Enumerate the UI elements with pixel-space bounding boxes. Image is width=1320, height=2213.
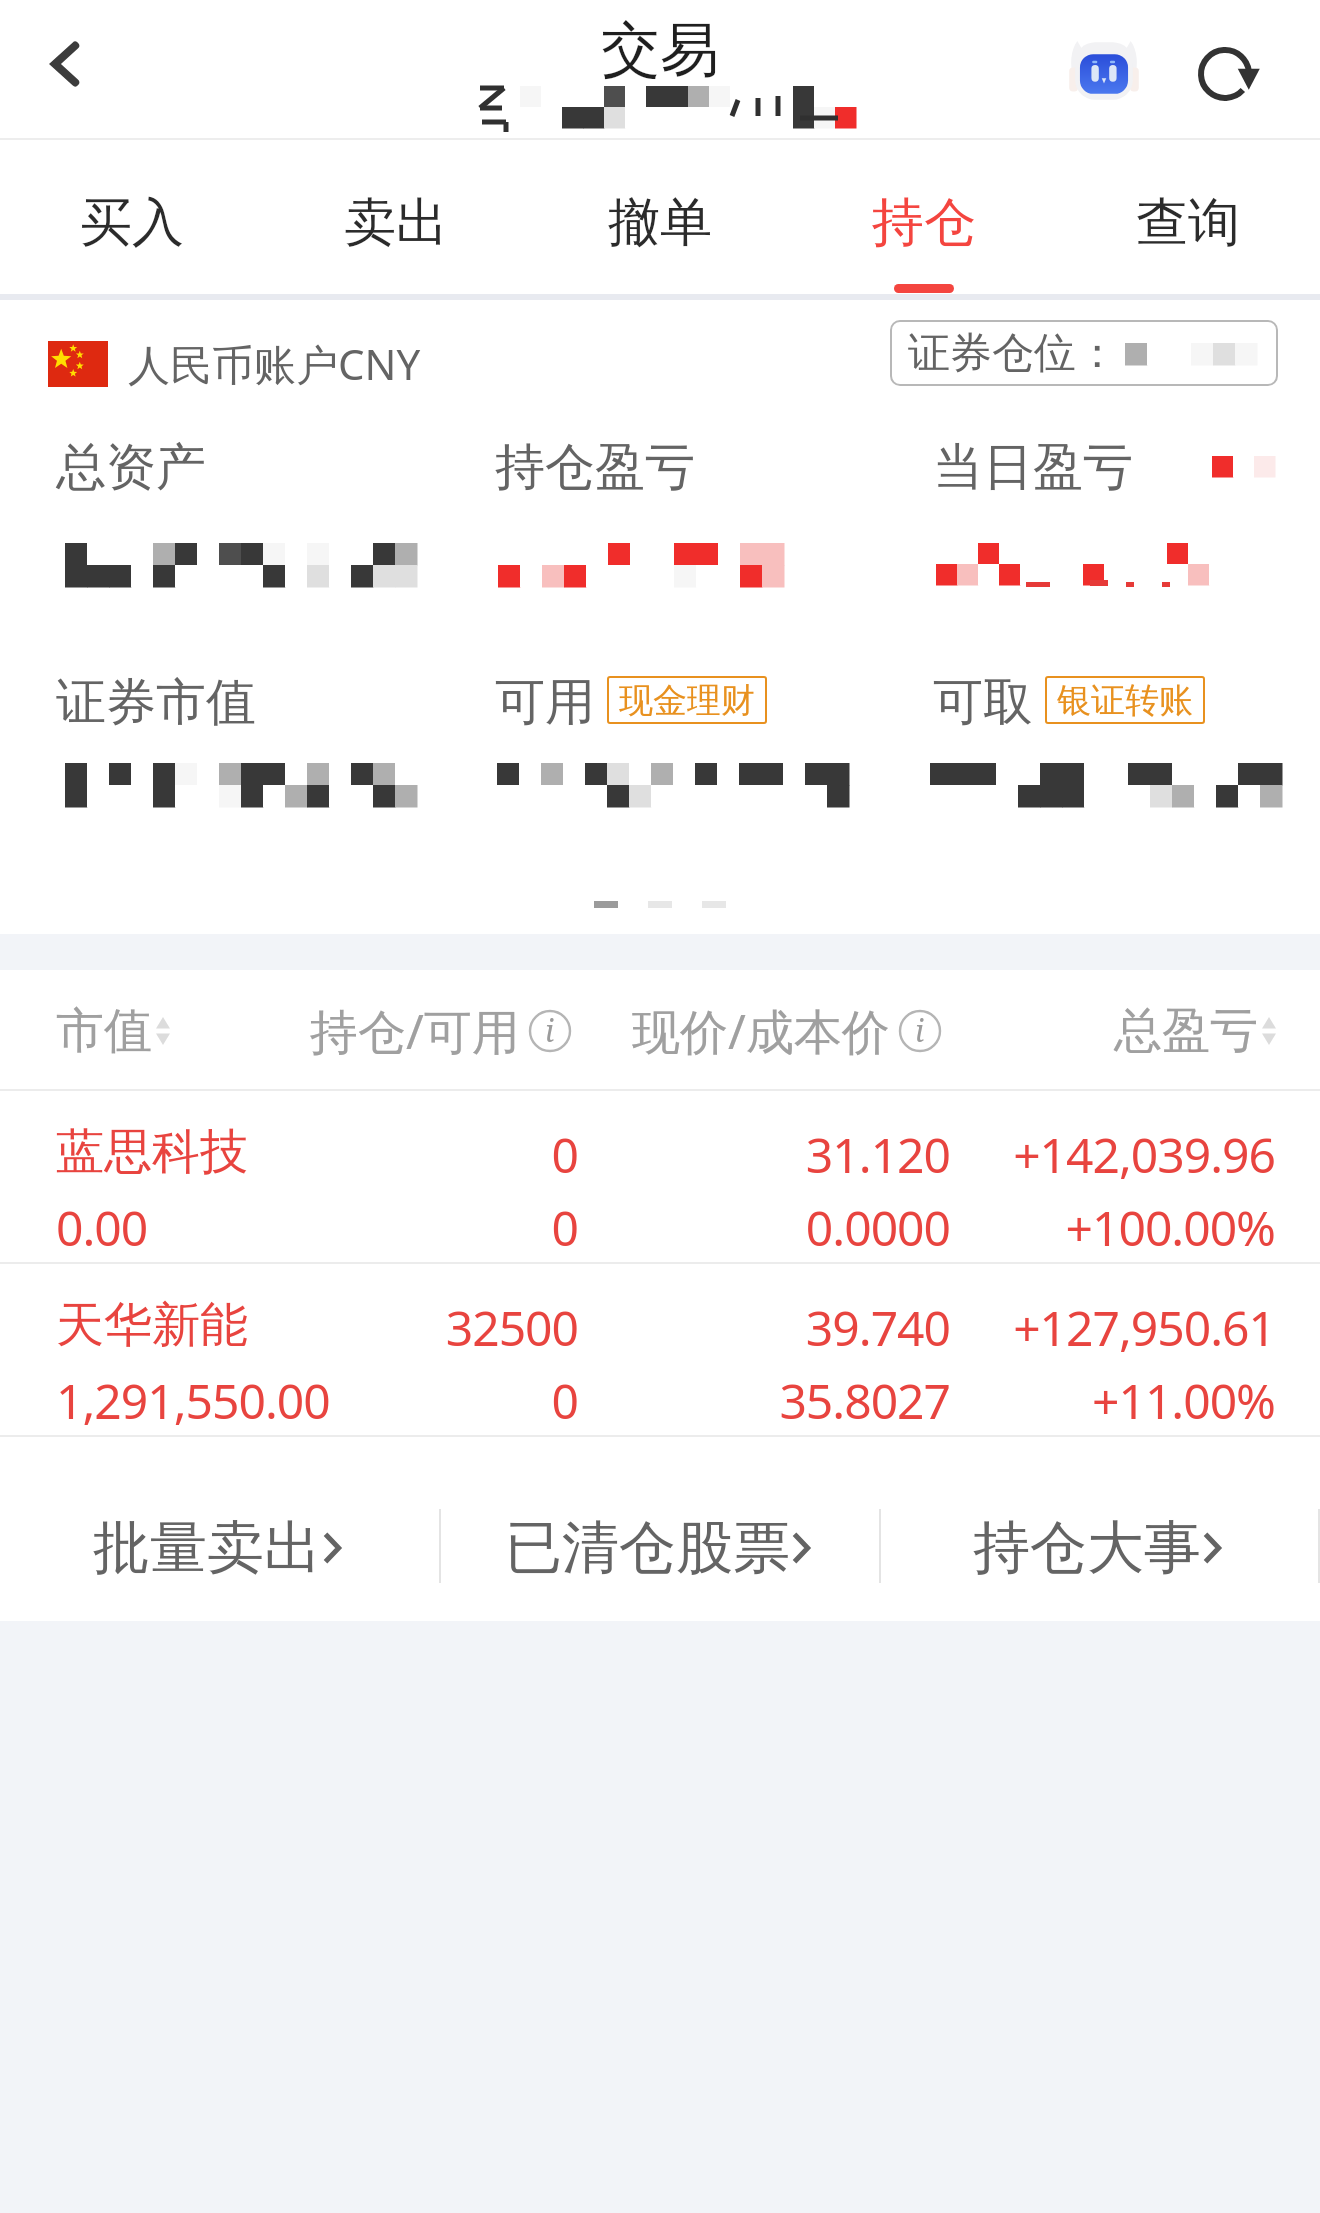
staticText: 批量卖出 bbox=[93, 1512, 321, 1584]
staticText: +11.00% bbox=[965, 1368, 1275, 1433]
staticText: 0 bbox=[178, 1122, 578, 1187]
staticText: 0.0000 bbox=[610, 1195, 950, 1260]
button[interactable]: Refresh bbox=[1191, 38, 1263, 110]
staticText: +127,950.61 bbox=[965, 1295, 1275, 1360]
staticText: 当日盈亏 bbox=[933, 436, 1133, 499]
button[interactable]: 银证转账 bbox=[1045, 676, 1205, 724]
staticText: 卖出 bbox=[344, 190, 448, 256]
staticText: 可取 bbox=[933, 671, 1033, 734]
staticText: 已清仓股票 bbox=[505, 1512, 790, 1584]
button[interactable]: 天华新能 bbox=[0, 1264, 1320, 1437]
staticText: 现价/成本价 bbox=[632, 998, 890, 1064]
button[interactable]: 现金理财 bbox=[607, 676, 767, 724]
staticText: 证券仓位： bbox=[908, 327, 1118, 380]
staticText: 可用 bbox=[495, 671, 595, 734]
staticText: 银证转账 bbox=[1057, 679, 1193, 722]
staticText: 持仓盈亏 bbox=[495, 436, 695, 499]
staticText: +142,039.96 bbox=[965, 1122, 1275, 1187]
button[interactable]: 蓝思科技 bbox=[0, 1091, 1320, 1264]
staticText: i bbox=[915, 1010, 925, 1051]
button[interactable]: More information bbox=[898, 1009, 942, 1053]
staticText: 交易 bbox=[601, 13, 719, 87]
staticText: 查询 bbox=[1136, 190, 1240, 256]
staticText: 持仓大事 bbox=[973, 1512, 1201, 1584]
staticText: 总资产 bbox=[56, 436, 206, 499]
staticText: 买入 bbox=[80, 190, 184, 256]
button[interactable]: 持仓大事 bbox=[880, 1474, 1320, 1622]
button[interactable]: 证券仓位： bbox=[890, 320, 1278, 386]
staticText: 0.00 bbox=[56, 1195, 148, 1260]
staticText: 35.8027 bbox=[610, 1368, 950, 1433]
button[interactable]: 已清仓股票 bbox=[440, 1474, 880, 1622]
staticText: 0 bbox=[178, 1195, 578, 1260]
button[interactable]: 持仓 bbox=[792, 140, 1056, 300]
staticText: 31.120 bbox=[610, 1122, 950, 1187]
staticText: 蓝思科技 bbox=[56, 1122, 248, 1182]
staticText: 1,291,550.00 bbox=[56, 1368, 330, 1433]
staticText: 0 bbox=[178, 1368, 578, 1433]
staticText: 撤单 bbox=[608, 190, 712, 256]
staticText: i bbox=[545, 1010, 555, 1051]
button[interactable]: 卖出 bbox=[264, 140, 528, 300]
staticText: 总盈亏 bbox=[1114, 1001, 1258, 1061]
staticText: 现金理财 bbox=[619, 679, 755, 722]
button[interactable]: More information bbox=[528, 1009, 572, 1053]
staticText: 证券市值 bbox=[56, 671, 256, 734]
staticText: 32500 bbox=[178, 1295, 578, 1360]
button[interactable]: Back bbox=[28, 26, 104, 102]
staticText: 39.740 bbox=[610, 1295, 950, 1360]
staticText: 持仓/可用 bbox=[310, 998, 520, 1064]
button[interactable]: 市值 bbox=[56, 970, 170, 1091]
button[interactable]: AI assistant bbox=[1067, 41, 1141, 101]
button[interactable]: 总盈亏 bbox=[1114, 970, 1276, 1091]
staticText: 人民币账户CNY bbox=[128, 335, 421, 392]
button[interactable]: 撤单 bbox=[528, 140, 792, 300]
button[interactable]: 批量卖出 bbox=[0, 1474, 440, 1622]
staticText: 天华新能 bbox=[56, 1295, 248, 1355]
button[interactable]: 查询 bbox=[1056, 140, 1320, 300]
button[interactable]: 买入 bbox=[0, 140, 264, 300]
staticText: 市值 bbox=[56, 1001, 152, 1061]
staticText: +100.00% bbox=[965, 1195, 1275, 1260]
staticText: 持仓 bbox=[872, 190, 976, 256]
